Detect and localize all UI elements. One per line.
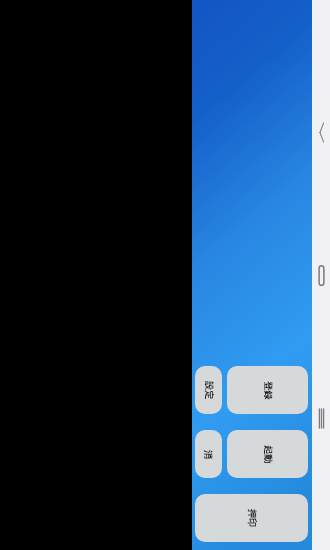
button[interactable]: 消 (195, 430, 222, 478)
button[interactable]: Home (312, 264, 330, 286)
button[interactable]: 設定 (195, 366, 222, 414)
button[interactable]: Back (312, 121, 330, 143)
button[interactable]: Recents (312, 407, 330, 429)
button[interactable]: 登録 (227, 366, 308, 414)
button[interactable]: 押印 (195, 494, 308, 542)
staticText: 消 (203, 450, 214, 459)
staticText: 押印 (246, 509, 257, 527)
staticText: 設定 (203, 381, 214, 399)
staticText: 登録 (262, 381, 273, 399)
staticText: 起動 (262, 445, 273, 463)
button[interactable]: 起動 (227, 430, 308, 478)
